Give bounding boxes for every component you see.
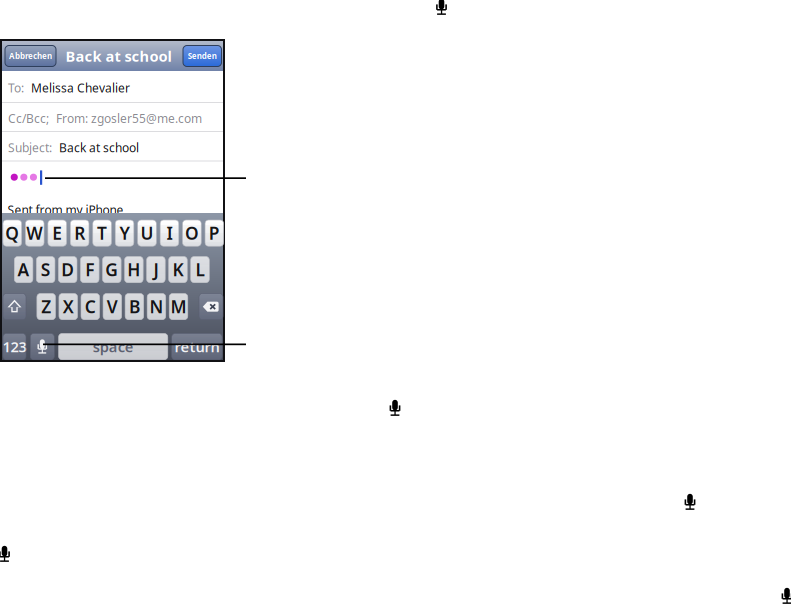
button[interactable]: Abbrechen	[5, 45, 56, 66]
button[interactable]: Senden	[183, 45, 221, 66]
staticText: Back at school	[59, 140, 139, 156]
staticText: Sent from my iPhone	[7, 202, 123, 218]
button[interactable]: space	[59, 333, 168, 360]
staticText: V	[107, 295, 118, 318]
staticText: B	[129, 295, 140, 318]
staticText: Z	[41, 295, 51, 318]
button[interactable]: V	[103, 293, 122, 320]
staticText: A	[18, 258, 30, 281]
staticText: space	[93, 337, 134, 356]
staticText: H	[127, 258, 140, 281]
button[interactable]: B	[125, 293, 144, 320]
button[interactable]: Shift	[3, 293, 26, 320]
staticText: Y	[120, 222, 130, 245]
button[interactable]: Y	[115, 220, 134, 246]
button[interactable]: N	[147, 293, 166, 320]
button[interactable]: Dictation	[30, 333, 54, 360]
staticText: U	[140, 222, 153, 245]
button[interactable]: E	[48, 220, 66, 246]
button[interactable]: F	[80, 256, 99, 283]
button[interactable]: P	[205, 220, 224, 246]
staticText: Abbrechen	[9, 51, 52, 61]
staticText: M	[170, 295, 186, 318]
staticText: N	[149, 295, 163, 318]
button[interactable]: 123	[3, 333, 26, 360]
staticText: O	[185, 222, 199, 245]
button[interactable]: K	[169, 256, 187, 283]
staticText: C	[85, 295, 96, 318]
button[interactable]: W	[25, 220, 44, 246]
staticText: Melissa Chevalier	[31, 80, 130, 96]
staticText: G	[105, 258, 118, 281]
button[interactable]: G	[102, 256, 121, 283]
staticText: X	[63, 295, 74, 318]
button[interactable]: T	[93, 220, 111, 246]
staticText: Cc/Bcc;	[8, 110, 49, 126]
button[interactable]: D	[58, 256, 77, 283]
staticText: T	[97, 222, 107, 245]
button[interactable]: X	[59, 293, 78, 320]
staticText: L	[195, 258, 204, 281]
button[interactable]: R	[70, 220, 89, 246]
staticText: return	[174, 337, 219, 356]
staticText: To:	[8, 80, 24, 96]
staticText: S	[41, 258, 51, 281]
button[interactable]: I	[160, 220, 179, 246]
button[interactable]: O	[183, 220, 201, 246]
staticText: D	[61, 258, 74, 281]
button[interactable]: L	[191, 256, 209, 283]
staticText: 123	[2, 337, 26, 356]
staticText: J	[153, 258, 158, 281]
button[interactable]: J	[147, 256, 165, 283]
button[interactable]: M	[169, 293, 188, 320]
staticText: Q	[5, 222, 19, 245]
staticText: Senden	[188, 51, 217, 61]
staticText: Subject:	[8, 140, 52, 156]
staticText: W	[26, 222, 43, 245]
staticText: F	[85, 258, 94, 281]
button[interactable]: Delete	[199, 293, 223, 320]
button[interactable]: return	[172, 333, 222, 360]
button[interactable]: S	[36, 256, 55, 283]
button[interactable]: A	[14, 256, 33, 283]
staticText: R	[74, 222, 85, 245]
button[interactable]: Z	[37, 293, 55, 320]
button[interactable]: U	[138, 220, 156, 246]
button[interactable]: H	[124, 256, 143, 283]
button[interactable]: C	[81, 293, 100, 320]
button[interactable]: Q	[3, 220, 22, 246]
staticText: I	[166, 222, 172, 245]
staticText: Back at school	[65, 46, 171, 66]
staticText: K	[172, 258, 183, 281]
staticText: E	[52, 222, 62, 245]
staticText: P	[209, 222, 220, 245]
staticText: From: zgosler55@me.com	[56, 110, 202, 126]
